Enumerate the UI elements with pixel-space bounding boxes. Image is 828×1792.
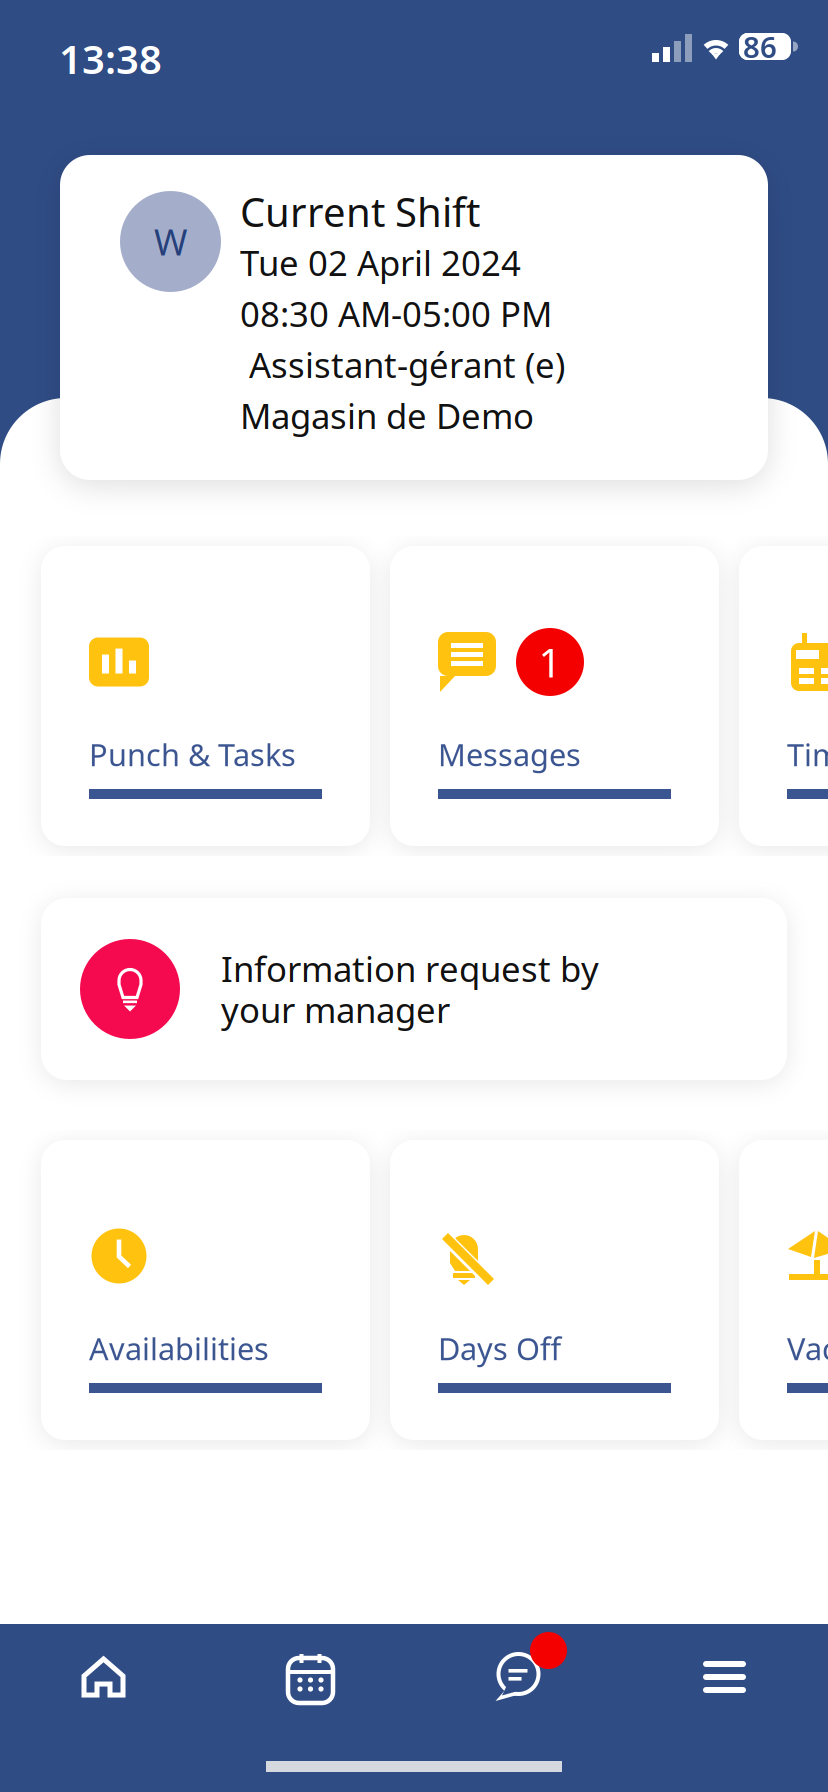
staticText: 13:38 [59, 32, 162, 85]
staticText: Magasin de Demo [240, 392, 534, 438]
staticText: Current Shift [240, 185, 480, 238]
staticText: Time [787, 734, 828, 775]
button[interactable]: Menu [621, 1622, 828, 1732]
button[interactable]: Punch & Tasks [41, 546, 370, 846]
staticText: Tue 02 April 2024 [240, 239, 521, 285]
button[interactable]: Vacation [739, 1140, 828, 1440]
staticText: Availabilities [89, 1328, 269, 1369]
staticText: Punch & Tasks [89, 734, 296, 775]
button[interactable]: Information request by [41, 898, 787, 1080]
staticText: Information request by [221, 945, 599, 991]
staticText: 1 [538, 635, 561, 688]
button[interactable]: Days Off [390, 1140, 719, 1440]
button[interactable]: Home [0, 1622, 207, 1732]
staticText: Assistant-gérant (e) [240, 341, 565, 387]
button[interactable]: Availabilities [41, 1140, 370, 1440]
staticText: Days Off [438, 1328, 561, 1369]
button[interactable]: Messages [414, 1622, 621, 1732]
staticText: Vacation [787, 1328, 828, 1369]
staticText: your manager [221, 986, 450, 1032]
staticText: Messages [438, 734, 581, 775]
staticText: 08:30 AM-05:00 PM [240, 290, 552, 336]
button[interactable]: 1 [390, 546, 719, 846]
button[interactable]: Schedule [207, 1622, 414, 1732]
staticText: 86 [743, 27, 777, 66]
staticText: W [154, 218, 187, 265]
button[interactable]: Time [739, 546, 828, 846]
